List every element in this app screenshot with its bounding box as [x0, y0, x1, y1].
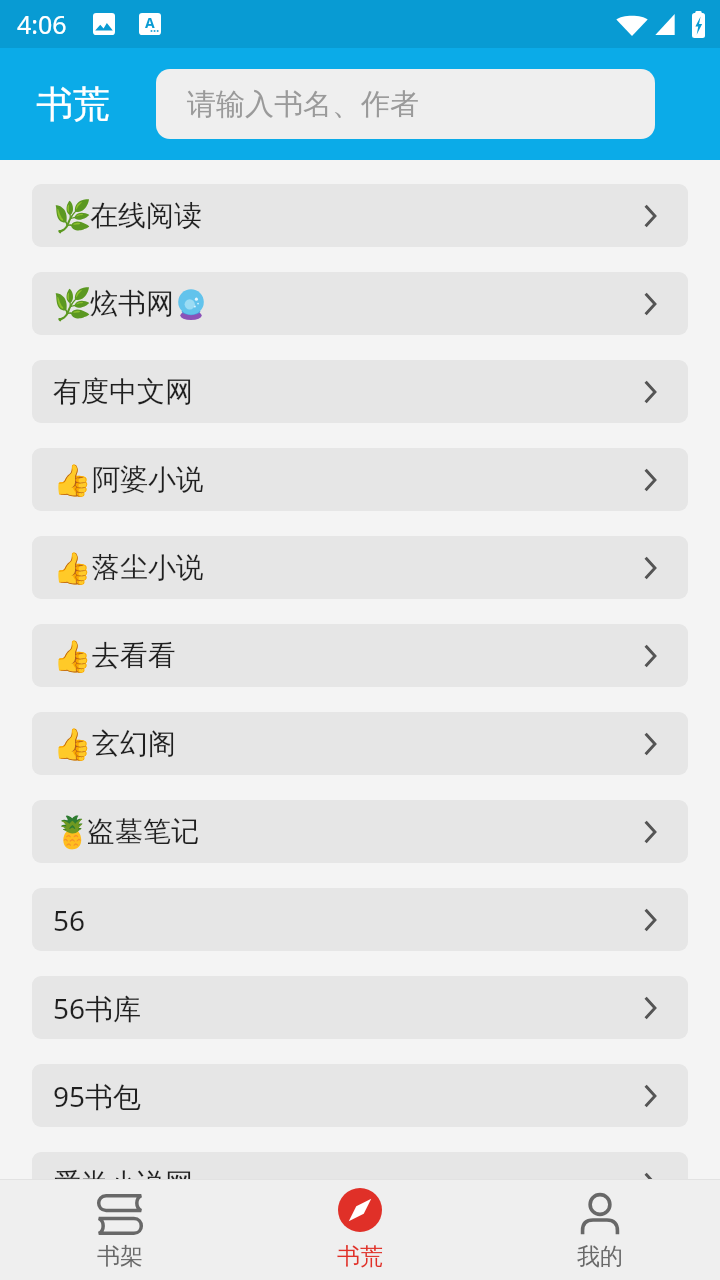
staticText: 我的: [577, 1242, 623, 1271]
staticText: 👍: [53, 550, 92, 586]
staticText: 落尘小说: [92, 550, 204, 585]
staticText: 盗墓笔记: [87, 814, 199, 849]
staticText: 56: [53, 901, 86, 939]
other: 我的: [579, 1194, 621, 1235]
other: Battery charging: [692, 11, 705, 38]
button[interactable]: 有度中文网: [32, 360, 688, 423]
staticText: 🌿: [53, 286, 90, 322]
button[interactable]: 56: [32, 888, 688, 951]
staticText: 去看看: [92, 638, 176, 673]
button[interactable]: 书架: [0, 1180, 240, 1280]
staticText: 🍍: [53, 814, 87, 850]
button[interactable]: 👍: [32, 536, 688, 599]
staticText: 👍: [53, 462, 92, 498]
button[interactable]: 56书库: [32, 976, 688, 1039]
other: Mobile signal: [654, 11, 676, 37]
staticText: 在线阅读: [90, 198, 202, 233]
button[interactable]: 👍: [32, 448, 688, 511]
staticText: 爱尚小说网: [53, 1166, 193, 1201]
staticText: 4:06: [17, 7, 67, 41]
staticText: 95书包: [53, 1077, 142, 1115]
other: Input method: [139, 13, 161, 35]
staticText: 书荒: [337, 1242, 383, 1271]
staticText: A: [145, 13, 155, 32]
button[interactable]: 请输入书名、作者: [156, 69, 655, 139]
other: 书架: [97, 1194, 143, 1235]
staticText: 炫书网: [90, 286, 174, 321]
button[interactable]: 爱尚小说网: [32, 1152, 688, 1215]
staticText: 书架: [97, 1242, 143, 1271]
staticText: 👍: [53, 726, 92, 762]
staticText: 56书库: [53, 989, 142, 1027]
staticText: 🌿: [53, 198, 90, 234]
staticText: 书荒: [36, 81, 110, 128]
staticText: 有度中文网: [53, 374, 193, 409]
button[interactable]: 👍: [32, 712, 688, 775]
button[interactable]: 🌿: [32, 184, 688, 247]
button[interactable]: 书荒: [240, 1180, 480, 1280]
button[interactable]: 95书包: [32, 1064, 688, 1127]
button[interactable]: 👍: [32, 624, 688, 687]
other: Wi-Fi: [616, 11, 648, 37]
button[interactable]: 🍍: [32, 800, 688, 863]
staticText: 阿婆小说: [92, 462, 204, 497]
button[interactable]: 我的: [480, 1180, 720, 1280]
staticText: 👍: [53, 638, 92, 674]
button[interactable]: 🌿: [32, 272, 688, 335]
other: 书荒: [338, 1188, 382, 1232]
staticText: 玄幻阁: [92, 726, 176, 761]
other: Screenshot: [93, 13, 115, 35]
staticText: 请输入书名、作者: [187, 86, 419, 123]
